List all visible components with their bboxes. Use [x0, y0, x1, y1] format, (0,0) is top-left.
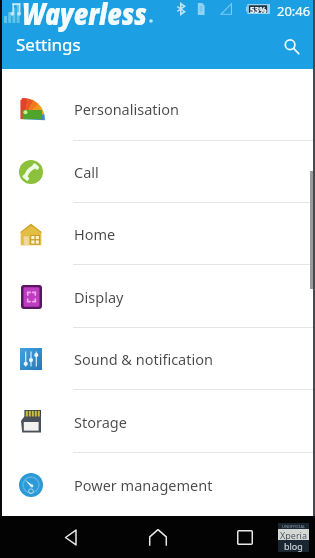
- staticText: Sound & notification: [74, 349, 213, 369]
- staticText: Home: [74, 224, 116, 244]
- staticText: Call: [74, 162, 99, 182]
- staticText: Wayerless: [22, 0, 147, 33]
- button[interactable]: Recent apps: [224, 516, 266, 558]
- staticText: blog: [284, 540, 303, 552]
- staticText: Display: [74, 287, 124, 307]
- button[interactable]: Home: [0, 203, 315, 265]
- staticText: Xperia: [280, 529, 307, 540]
- staticText: Power management: [74, 475, 213, 495]
- staticText: 20:46: [277, 2, 311, 20]
- button[interactable]: Home: [137, 516, 179, 558]
- button[interactable]: Call: [0, 141, 315, 203]
- button[interactable]: Back: [50, 516, 92, 558]
- button[interactable]: Personalisation: [0, 69, 315, 141]
- button[interactable]: Power management: [0, 453, 315, 517]
- button[interactable]: Search: [275, 30, 309, 64]
- staticText: Personalisation: [74, 99, 180, 119]
- staticText: Settings: [16, 33, 81, 56]
- staticText: Storage: [74, 412, 127, 432]
- staticText: 53%: [250, 4, 267, 14]
- button[interactable]: Sound & notification: [0, 328, 315, 390]
- button[interactable]: Storage: [0, 390, 315, 453]
- staticText: UNOFFICIAL: [282, 524, 306, 529]
- button[interactable]: Display: [0, 265, 315, 328]
